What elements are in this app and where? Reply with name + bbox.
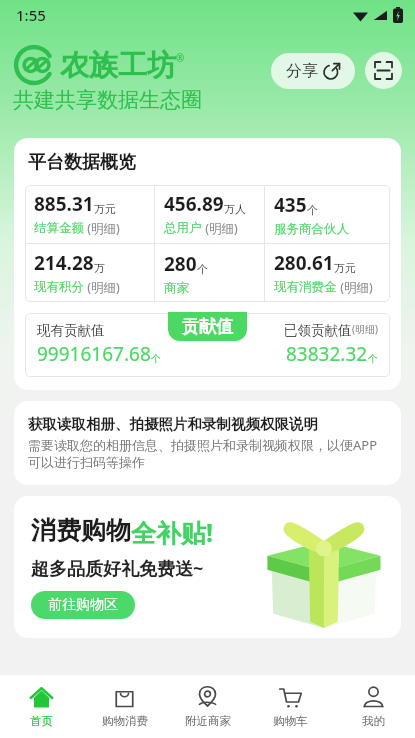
staticText: 个 [151, 352, 161, 365]
button[interactable]: 购物消费 [83, 675, 166, 738]
staticText: 分享 [286, 61, 318, 81]
button[interactable]: 已领贡献值 [207, 322, 378, 367]
staticText: 万 [94, 261, 105, 275]
button[interactable]: 贡献值 [168, 312, 247, 341]
button[interactable]: 现有贡献值 [37, 322, 207, 367]
staticText: 435 [274, 192, 307, 218]
staticText: 现有贡献值 [37, 322, 105, 339]
staticText: 99916167.68 [37, 341, 151, 367]
button[interactable]: 我的 [332, 675, 415, 738]
staticText: 获取读取相册、拍摄照片和录制视频权限说明 [28, 415, 318, 433]
staticText: 万元 [94, 202, 116, 216]
staticText: (明细) [84, 220, 120, 237]
button[interactable]: 附近商家 [166, 675, 249, 738]
staticText: 个 [307, 203, 318, 217]
staticText: 贡献值 [182, 316, 233, 337]
staticText: 现有积分 [34, 279, 84, 295]
staticText: 服务商合伙人 [274, 221, 349, 237]
staticText: 平台数据概览 [28, 151, 136, 174]
staticText: 83832.32 [286, 341, 368, 367]
staticText: 需要读取您的相册信息、拍摄照片和录制视频权限，以便APP可以进行扫码等操作 [28, 436, 387, 471]
button[interactable]: 消费购物 [14, 496, 401, 638]
staticText: 885.31 [34, 191, 94, 217]
button[interactable]: 前往购物区 [31, 591, 135, 619]
staticText: 购物消费 [102, 714, 148, 728]
staticText: 首页 [30, 714, 53, 728]
staticText: 总用户 [164, 220, 202, 236]
staticText: 附近商家 [185, 714, 231, 728]
staticText: 1:55 [16, 5, 46, 25]
button[interactable]: 首页 [0, 675, 83, 738]
staticText: 456.89 [164, 191, 224, 217]
staticText: 消费购物 [31, 515, 131, 546]
staticText: (明细) [337, 279, 373, 296]
button[interactable]: 购物车 [249, 675, 332, 738]
button[interactable]: 435 [265, 185, 390, 243]
staticText: 共建共享数据生态圈 [13, 87, 202, 113]
staticText: 现有消费金 [274, 279, 337, 295]
staticText: 个 [368, 352, 378, 365]
staticText: 280.61 [274, 250, 334, 276]
staticText: 个 [197, 262, 208, 276]
staticText: 农族工坊 [60, 47, 176, 84]
button[interactable]: Scan QR code [365, 52, 402, 89]
staticText: (明细) [202, 220, 238, 237]
button[interactable]: 280.61 [265, 244, 390, 302]
staticText: (明细) [352, 322, 378, 336]
button[interactable]: 885.31 [25, 185, 154, 243]
button[interactable]: 分享 [271, 53, 355, 89]
staticText: 万人 [224, 202, 246, 216]
staticText: 全补贴! [131, 515, 214, 549]
staticText: 万元 [334, 261, 356, 275]
staticText: 商家 [164, 280, 189, 296]
staticText: 214.28 [34, 250, 94, 276]
staticText: 我的 [362, 714, 385, 728]
staticText: 前往购物区 [48, 596, 118, 614]
staticText: (明细) [84, 279, 120, 296]
staticText: 超多品质好礼免费送~ [31, 556, 204, 581]
staticText: ® [176, 51, 185, 65]
staticText: 280 [164, 251, 197, 277]
staticText: 结算金额 [34, 220, 84, 236]
button[interactable]: 456.89 [155, 185, 264, 243]
staticText: 购物车 [273, 714, 308, 728]
button[interactable]: 280 [155, 244, 264, 302]
staticText: 已领贡献值 [284, 322, 352, 339]
button[interactable]: 214.28 [25, 244, 154, 302]
